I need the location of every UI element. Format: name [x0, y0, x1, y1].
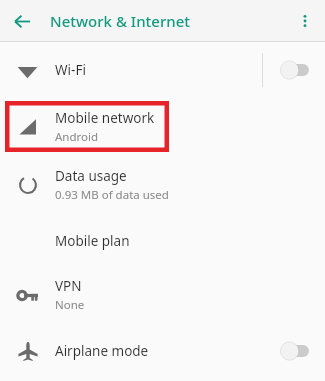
staticText: Android — [55, 129, 99, 145]
staticText: Network & Internet — [50, 11, 191, 31]
button[interactable]: Back — [7, 6, 37, 36]
button[interactable]: Wi-Fi — [0, 42, 325, 98]
button[interactable]: Mobile network — [0, 98, 325, 156]
staticText: Wi-Fi — [55, 61, 86, 79]
staticText: Data usage — [55, 167, 127, 185]
staticText: Airplane mode — [55, 342, 149, 360]
button[interactable]: Mobile plan — [0, 214, 325, 267]
button[interactable]: Data usage — [0, 156, 325, 214]
staticText: VPN — [55, 277, 82, 295]
button[interactable]: Airplane mode switch — [263, 323, 325, 379]
button[interactable]: VPN — [0, 267, 325, 323]
staticText: 0.93 MB of data used — [55, 187, 169, 203]
button[interactable]: Airplane mode — [0, 323, 325, 379]
staticText: Mobile network — [55, 109, 155, 127]
button[interactable]: Wi-Fi switch — [263, 42, 325, 98]
staticText: None — [55, 297, 85, 313]
staticText: Mobile plan — [55, 232, 130, 250]
button[interactable]: More options — [291, 7, 319, 35]
